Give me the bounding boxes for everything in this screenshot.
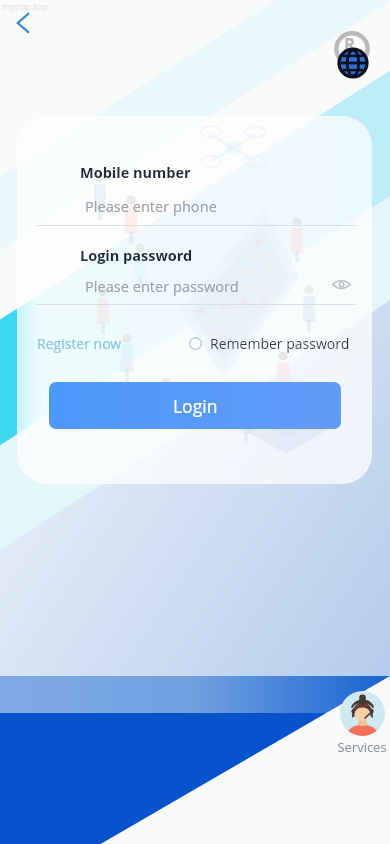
staticText: R [344, 33, 356, 56]
staticText: Login [173, 394, 218, 418]
staticText: Remember password [210, 334, 350, 353]
button[interactable]: Register now [31, 328, 128, 359]
button[interactable]: Show password [325, 268, 357, 300]
staticText: Services [337, 738, 387, 756]
button[interactable]: Back [5, 5, 41, 41]
staticText: Please enter password [85, 276, 239, 296]
staticText: myppp.top [2, 0, 48, 12]
button[interactable]: Services [337, 691, 387, 756]
staticText: Please enter phone [85, 196, 217, 216]
staticText: Register now [37, 334, 122, 353]
button[interactable]: Remember password [183, 328, 356, 359]
staticText: Login password [80, 246, 193, 266]
button[interactable]: Login [49, 382, 341, 429]
staticText: Mobile number [80, 163, 191, 183]
button[interactable]: Language [336, 46, 370, 80]
